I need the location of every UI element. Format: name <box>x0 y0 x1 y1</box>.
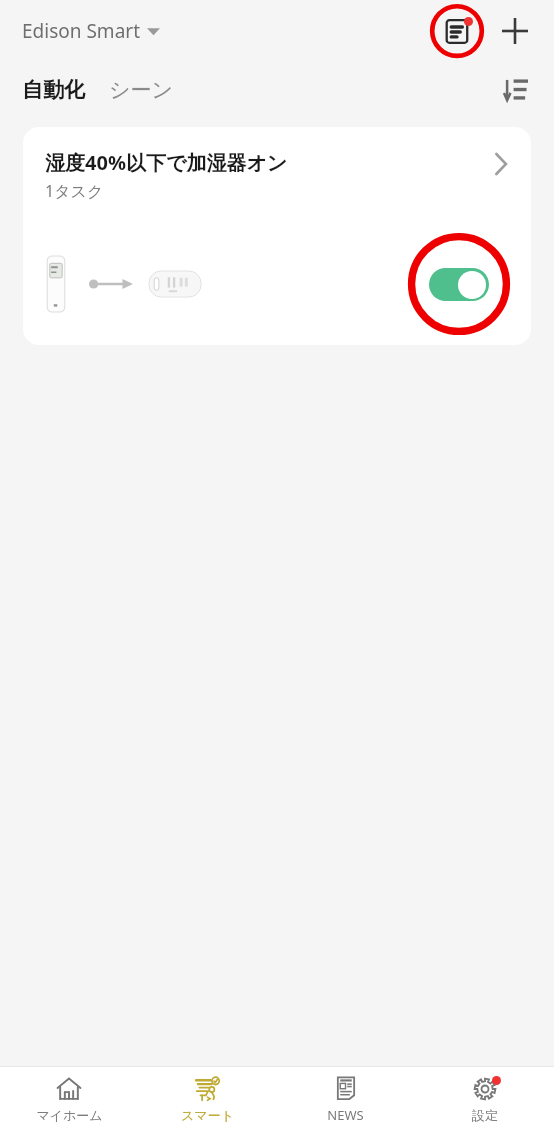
button[interactable]: Open automation <box>487 151 513 177</box>
staticText: 1タスク <box>45 180 104 202</box>
staticText: NEWS <box>327 1106 364 1124</box>
staticText: 設定 <box>472 1107 498 1123</box>
button[interactable]: Add <box>492 8 538 54</box>
button[interactable]: Logs <box>426 0 488 62</box>
button[interactable]: Edison Smart <box>22 18 160 44</box>
button[interactable]: 設定 <box>415 1067 554 1130</box>
button[interactable]: スマート <box>138 1067 276 1130</box>
button[interactable]: シーン <box>109 77 173 103</box>
button[interactable]: Sort <box>494 68 538 112</box>
staticText: マイホーム <box>36 1107 103 1123</box>
staticText: スマート <box>181 1107 234 1123</box>
staticText: 湿度40%以下で加湿器オン <box>45 149 288 176</box>
button[interactable]: Toggle automation <box>405 233 513 335</box>
staticText: シーン <box>109 77 173 103</box>
button[interactable]: 自動化 <box>22 77 85 103</box>
staticText: 自動化 <box>22 77 85 103</box>
button[interactable]: NEWS <box>276 1067 415 1130</box>
staticText: Edison Smart <box>22 18 140 44</box>
button[interactable]: マイホーム <box>0 1067 138 1130</box>
button[interactable]: 湿度40%以下で加湿器オン <box>23 127 531 345</box>
